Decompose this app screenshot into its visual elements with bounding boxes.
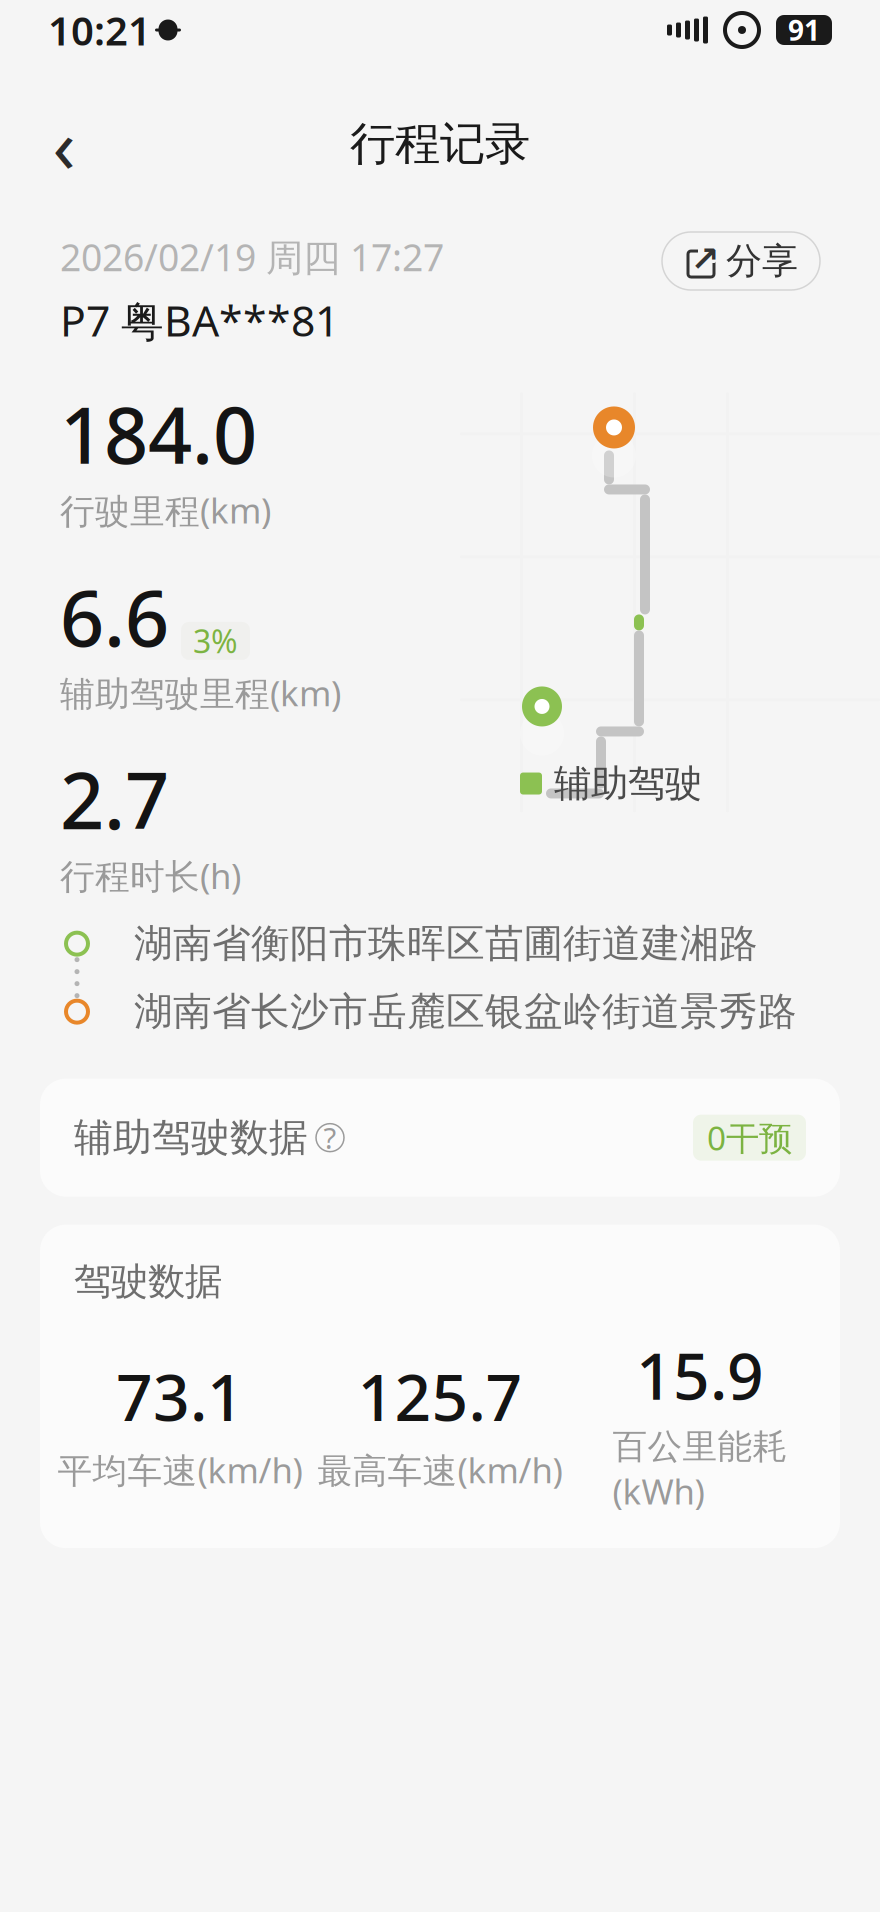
button[interactable]: ↗ [662,232,820,290]
staticText: 2.7 [60,748,169,851]
button[interactable]: 辅助驾驶数据 [40,1079,840,1197]
staticText: 15.9 [636,1332,764,1417]
staticText: 驾驶数据 [74,1259,222,1304]
staticText: 分享 [726,239,798,283]
staticText: 辅助驾驶里程(km) [60,670,341,716]
staticText: 73.1 [116,1354,244,1439]
staticText: 0干预 [707,1115,792,1160]
staticText: 湖南省衡阳市珠晖区苗圃街道建湘路 [134,920,758,967]
staticText: 平均车速(km/h) [57,1447,302,1493]
staticText: 百公里能耗(kWh) [612,1425,787,1514]
staticText: 184.0 [60,382,257,485]
button[interactable]: 返回 [22,102,106,186]
staticText: 辅助驾驶 [554,761,702,806]
staticText: 3% [193,620,238,662]
staticText: 辅助驾驶数据 [74,1114,308,1161]
staticText: ? [323,1118,336,1157]
staticText: 91 [788,11,820,49]
staticText: ↗ [690,239,719,279]
staticText: 湖南省长沙市岳麓区银盆岭街道景秀路 [134,988,797,1035]
staticText: 10:21 [48,3,151,56]
staticText: 最高车速(km/h) [317,1447,562,1493]
staticText: 125.7 [357,1354,522,1439]
staticText: 行程时长(h) [60,853,241,899]
staticText: 行驶里程(km) [60,487,271,533]
staticText: 行程记录 [350,116,530,172]
staticText: 6.6 [60,565,169,668]
staticText: ‹ [52,94,75,194]
staticText: P7 粤BA***81 [60,292,339,348]
staticText: 2026/02/19 周四 17:27 [60,232,444,282]
